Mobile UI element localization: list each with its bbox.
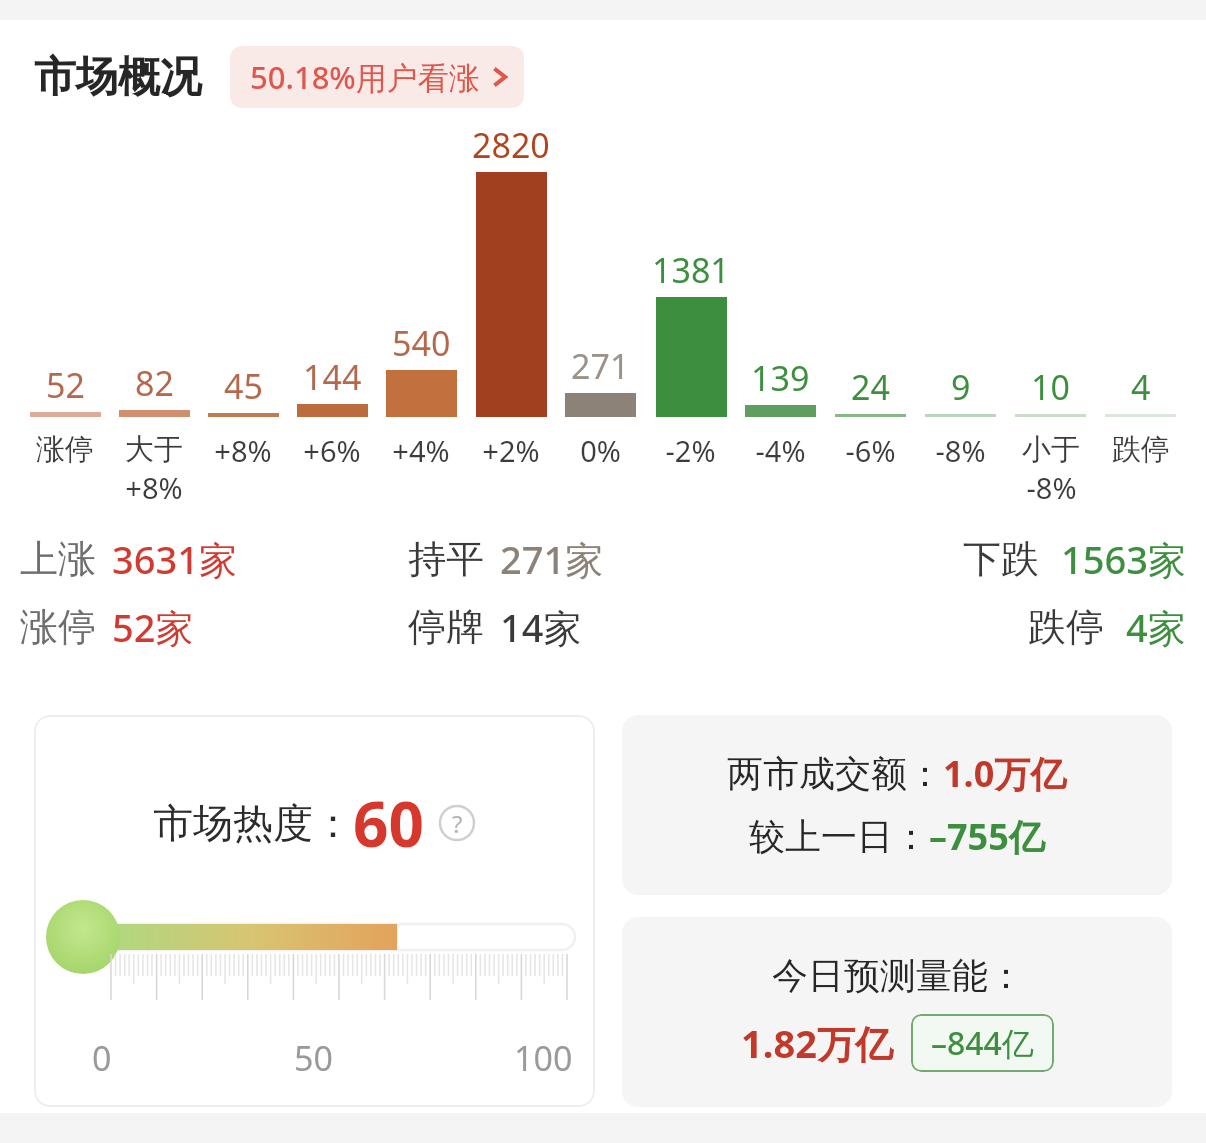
staticText: 271 (571, 343, 630, 389)
staticText: 9 (951, 364, 971, 410)
staticText: 较上一日： (749, 814, 929, 859)
staticText: 停牌 (408, 603, 484, 651)
staticText: 跌停 (1112, 431, 1170, 468)
staticText: +2% (482, 431, 540, 470)
staticText: 两市成交额： (727, 751, 943, 796)
button[interactable]: 271 (557, 116, 644, 470)
staticText: 271家 (500, 533, 604, 585)
staticText: -8% (935, 431, 986, 470)
staticText: 4家 (1126, 601, 1186, 653)
button[interactable]: 139 (737, 116, 824, 470)
staticText: 1563家 (1061, 533, 1186, 585)
button[interactable]: 4 (1097, 116, 1184, 468)
staticText: 100 (514, 1035, 573, 1081)
staticText: 52家 (112, 601, 194, 653)
staticText: 0 (92, 1035, 112, 1081)
staticText: 24 (851, 364, 890, 410)
staticText: 2820 (472, 122, 550, 168)
staticText: 涨停 (36, 431, 94, 468)
staticText: +8% (125, 468, 183, 507)
staticText: 上涨 (20, 535, 96, 583)
button[interactable]: 两市成交额： (622, 715, 1172, 895)
staticText: 3631家 (112, 533, 237, 585)
staticText: -2% (665, 431, 716, 470)
staticText: +6% (303, 431, 361, 470)
staticText: ? (452, 807, 463, 840)
staticText: 540 (392, 320, 451, 366)
staticText: 市场概况 (34, 51, 202, 104)
button[interactable]: 50.18%用户看涨 (230, 46, 524, 108)
button[interactable]: 9 (917, 116, 1004, 470)
staticText: 涨停 (20, 603, 96, 651)
button[interactable]: 24 (827, 116, 914, 470)
staticText: 1.0万亿 (943, 749, 1067, 798)
button[interactable]: 2820 (467, 116, 554, 470)
staticText: +8% (214, 431, 272, 470)
staticText: 52 (46, 362, 85, 408)
staticText: 45 (224, 363, 263, 409)
staticText: –844亿 (931, 1021, 1034, 1065)
staticText: 50.18%用户看涨 (250, 56, 480, 98)
button[interactable]: 1381 (647, 116, 734, 470)
staticText: 持平 (408, 535, 484, 583)
staticText: 50 (294, 1035, 333, 1081)
staticText: 60 (353, 781, 424, 865)
button[interactable]: 今日预测量能： (622, 917, 1172, 1107)
button[interactable]: 52 (22, 116, 108, 468)
staticText: 4 (1131, 364, 1151, 410)
staticText: 10 (1031, 364, 1070, 410)
button[interactable]: 540 (378, 116, 464, 470)
staticText: 市场热度： (153, 798, 353, 848)
staticText: 0% (580, 431, 621, 470)
staticText: 下跌 (963, 535, 1039, 583)
staticText: -4% (755, 431, 806, 470)
button[interactable]: 82 (111, 116, 197, 507)
staticText: 144 (303, 354, 362, 400)
button[interactable]: 帮助 (438, 804, 476, 842)
staticText: 82 (135, 360, 174, 406)
staticText: –755亿 (929, 812, 1045, 861)
button[interactable]: 144 (289, 116, 375, 470)
staticText: 14家 (500, 601, 582, 653)
button[interactable]: 45 (200, 116, 286, 470)
staticText: 跌停 (1028, 603, 1104, 651)
staticText: 小于 (1022, 431, 1080, 468)
staticText: +4% (392, 431, 450, 470)
staticText: -6% (845, 431, 896, 470)
staticText: 1381 (652, 247, 730, 293)
staticText: -8% (1026, 468, 1077, 507)
staticText: 139 (751, 355, 810, 401)
button[interactable]: 10 (1007, 116, 1094, 507)
button[interactable]: 市场热度： (34, 715, 595, 1107)
staticText: 大于 (125, 431, 183, 468)
staticText: 1.82万亿 (741, 1017, 893, 1069)
staticText: 今日预测量能： (772, 953, 1024, 998)
